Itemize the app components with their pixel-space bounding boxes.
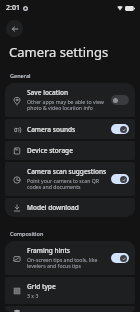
- staticText: Camera settings: [9, 43, 109, 61]
- button[interactable]: Back: [6, 20, 23, 37]
- staticText: Point your camera to scan QR codes and d…: [27, 177, 107, 191]
- staticText: Save location: [27, 88, 69, 97]
- button[interactable]: Model download: [5, 198, 135, 217]
- staticText: Camera scan suggestions: [27, 167, 107, 176]
- staticText: Camera sounds: [27, 125, 76, 134]
- button[interactable]: Grid type: [5, 277, 135, 304]
- button[interactable]: Device storage: [5, 141, 135, 160]
- staticText: General: [10, 72, 31, 79]
- staticText: Composition: [10, 230, 44, 237]
- button[interactable]: On: [111, 253, 129, 263]
- staticText: Framing hints: [27, 246, 71, 255]
- staticText: Model download: [27, 203, 79, 212]
- button[interactable]: Camera scan suggestions: [5, 162, 135, 196]
- button[interactable]: Camera sounds: [5, 119, 135, 139]
- staticText: Other apps may be able to view photo & v…: [27, 98, 107, 112]
- staticText: On-screen tips and tools, like levelers …: [27, 256, 107, 270]
- button[interactable]: On: [111, 174, 129, 184]
- staticText: Grid type: [27, 282, 56, 291]
- button[interactable]: Keep selfies as seen: [5, 306, 135, 312]
- button[interactable]: Framing hints: [5, 241, 135, 275]
- staticText: Device storage: [27, 146, 73, 155]
- staticText: 3 x 3: [27, 292, 39, 299]
- button[interactable]: Off: [111, 95, 129, 105]
- button[interactable]: On: [111, 124, 129, 134]
- staticText: 2:01: [6, 3, 20, 13]
- button[interactable]: Save location: [5, 83, 135, 117]
